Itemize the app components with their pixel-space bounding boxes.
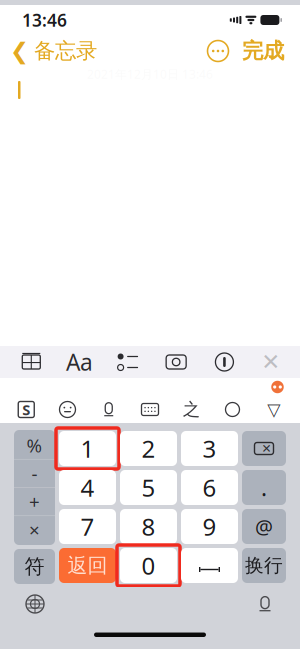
staticText: 9 [202, 511, 216, 542]
staticText: 5 [141, 472, 155, 503]
button[interactable]: 标记 [207, 347, 241, 377]
staticText: ❮ [10, 38, 29, 64]
button[interactable]: 9 [181, 509, 238, 544]
staticText: @ [255, 513, 273, 540]
button[interactable]: @ [242, 509, 286, 544]
staticText: 8 [141, 511, 155, 542]
button[interactable]: . [242, 470, 286, 505]
button[interactable]: 0 [120, 548, 177, 583]
button[interactable]: 关闭 [256, 347, 286, 377]
button[interactable]: 7 [59, 509, 116, 544]
staticText: 13:46 [22, 8, 67, 31]
staticText: 2 [141, 433, 155, 464]
button[interactable]: 相机 [159, 347, 193, 377]
button[interactable]: - [14, 460, 55, 487]
staticText: 4 [80, 472, 94, 503]
button[interactable]: 删除 [242, 431, 286, 466]
button[interactable]: 搜索 [217, 396, 247, 422]
button[interactable]: 键盘 [135, 396, 165, 422]
staticText: 返回 [67, 553, 107, 578]
button[interactable]: 清单 [111, 347, 145, 377]
button[interactable]: 表情 [52, 396, 82, 422]
button[interactable]: 切换键盘 [20, 589, 50, 619]
button[interactable]: 更多 [202, 36, 234, 66]
button[interactable]: 手写 [176, 396, 206, 422]
staticText: % [26, 433, 42, 458]
staticText: . [261, 472, 267, 502]
staticText: 1 [80, 433, 94, 464]
staticText: ▽ [267, 400, 280, 419]
button[interactable]: 换行 [242, 548, 286, 583]
staticText: - [31, 461, 37, 486]
button[interactable]: 4 [59, 470, 116, 505]
button[interactable]: % [14, 431, 55, 459]
staticText: ✕ [261, 349, 280, 375]
staticText: 符 [24, 554, 44, 579]
staticText: S [22, 400, 30, 419]
button[interactable]: 完成 [234, 33, 292, 69]
button[interactable]: ❮ [0, 33, 97, 69]
button[interactable]: 8 [120, 509, 177, 544]
button[interactable]: × [14, 516, 55, 543]
button[interactable]: 2 [120, 431, 177, 466]
button[interactable]: 语音输入 [94, 396, 124, 422]
button[interactable]: + [14, 488, 55, 515]
button[interactable]: 空格 [181, 548, 238, 583]
button[interactable]: 表格 [14, 347, 48, 377]
button[interactable]: 5 [120, 470, 177, 505]
staticText: ✕ [261, 442, 271, 455]
button[interactable]: 符 [14, 549, 55, 584]
button[interactable]: 6 [181, 470, 238, 505]
staticText: Aa [66, 347, 93, 377]
staticText: 6 [202, 472, 216, 503]
button[interactable]: 收起 [259, 396, 289, 422]
staticText: 0 [141, 550, 155, 581]
staticText: 7 [80, 511, 94, 542]
staticText: 3 [202, 433, 216, 464]
button[interactable]: 文字格式 [63, 347, 97, 377]
staticText: 备忘录 [34, 38, 97, 64]
staticText: 换行 [245, 554, 283, 577]
button[interactable]: 搜狗输入法 [11, 396, 41, 422]
staticText: 完成 [242, 38, 284, 64]
button[interactable]: 1 [59, 431, 116, 466]
button[interactable]: 返回 [59, 548, 116, 583]
staticText: × [29, 517, 40, 542]
staticText: + [29, 489, 40, 514]
staticText: 之 [183, 399, 200, 420]
button[interactable]: 3 [181, 431, 238, 466]
button[interactable]: 听写 [250, 589, 280, 619]
